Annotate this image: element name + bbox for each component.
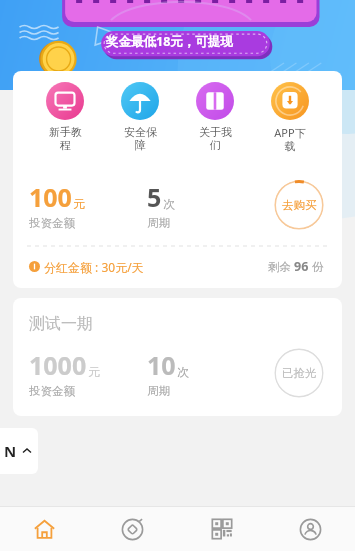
staticText: 10 bbox=[147, 348, 176, 382]
button[interactable]: 关于我 们 bbox=[182, 82, 248, 152]
staticText: 去购买 bbox=[282, 198, 317, 212]
staticText: 剩余 bbox=[268, 259, 294, 275]
button[interactable]: APP下 载 bbox=[257, 82, 323, 153]
button[interactable]: 我的 bbox=[266, 507, 355, 551]
button[interactable]: 去购买 bbox=[274, 180, 324, 230]
staticText: 5 bbox=[147, 180, 162, 214]
staticText: 元 bbox=[73, 196, 85, 211]
staticText: 分红金额 : 30元/天 bbox=[44, 259, 144, 275]
button[interactable]: 安全保 障 bbox=[107, 82, 173, 152]
staticText: 奖金最低18元，可提现 bbox=[106, 33, 233, 50]
staticText: 投资金额 bbox=[29, 216, 75, 230]
staticText: 周期 bbox=[147, 384, 170, 398]
staticText: 新手教 程 bbox=[49, 125, 82, 152]
staticText: 周期 bbox=[147, 216, 170, 230]
staticText: 关于我 们 bbox=[199, 125, 232, 152]
button[interactable]: 新手专享 bbox=[13, 130, 342, 288]
staticText: 96 bbox=[294, 258, 309, 275]
staticText: 已抢光 bbox=[282, 366, 317, 380]
staticText: 次 bbox=[163, 196, 175, 211]
staticText: 1000 bbox=[29, 348, 87, 382]
staticText: 元 bbox=[88, 364, 100, 379]
button[interactable]: 扫码 bbox=[177, 507, 266, 551]
button[interactable]: 发现 bbox=[88, 507, 177, 551]
button[interactable]: N bbox=[0, 428, 38, 474]
button[interactable]: 测试一期 bbox=[13, 298, 342, 416]
staticText: 理财精选 bbox=[148, 100, 208, 119]
staticText: 次 bbox=[177, 364, 189, 379]
button[interactable]: 首页 bbox=[0, 507, 88, 551]
button[interactable]: 新手教 程 bbox=[32, 82, 98, 152]
staticText: APP下 载 bbox=[274, 125, 306, 153]
staticText: N bbox=[4, 441, 17, 461]
staticText: 安全保 障 bbox=[124, 125, 157, 152]
staticText: 投资金额 bbox=[29, 384, 75, 398]
staticText: 100 bbox=[29, 180, 72, 214]
button[interactable]: 已抢光 bbox=[274, 348, 324, 398]
staticText: 日限购 1 份 bbox=[267, 148, 326, 164]
staticText: 份 bbox=[309, 259, 324, 275]
staticText: 新手专享 bbox=[29, 146, 93, 166]
staticText: 测试一期 bbox=[29, 314, 93, 334]
